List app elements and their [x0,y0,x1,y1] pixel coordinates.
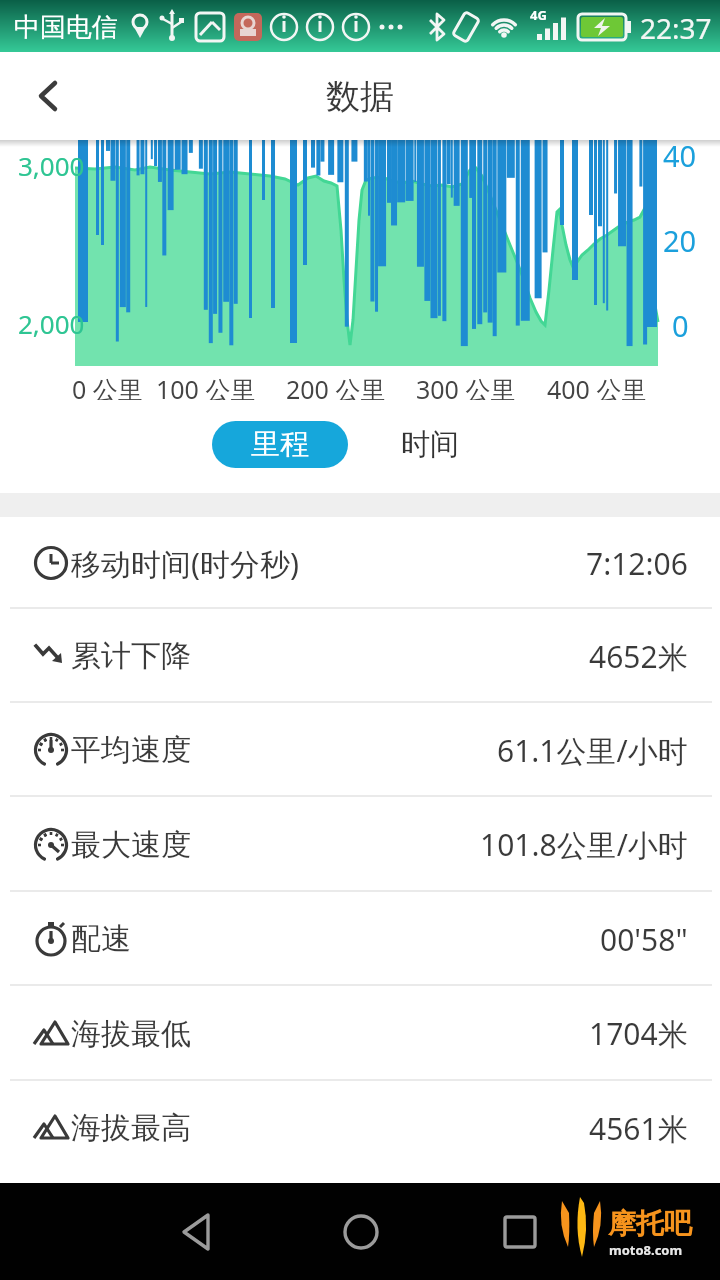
staticText: 海拔最高 [71,1109,191,1147]
button[interactable]: 配速 [0,892,720,986]
staticText: 时间 [401,426,459,463]
staticText: 0 [672,306,689,345]
staticText: 4G [530,6,547,24]
button[interactable]: 时间 [372,421,488,468]
staticText: 22:37 [640,9,712,47]
staticText: 中国电信 [14,11,118,44]
staticText: 40 [663,136,697,175]
button[interactable] [20,68,76,124]
staticText: 100 公里 [156,372,256,406]
staticText: 4561米 [589,1108,688,1149]
staticText: 101.8公里/小时 [480,824,688,865]
staticText: 3,000 [18,148,85,183]
button[interactable]: 累计下降 [0,609,720,703]
button[interactable]: 里程 [212,421,348,468]
staticText: 配速 [71,920,131,958]
staticText: moto8.com [609,1241,683,1259]
staticText: 最大速度 [71,826,191,864]
staticText: 400 公里 [547,372,647,406]
staticText: 300 公里 [416,372,516,406]
staticText: 摩托吧 [608,1206,692,1241]
button[interactable]: 最大速度 [0,797,720,892]
staticText: 平均速度 [71,731,191,769]
staticText: 2,000 [18,306,85,341]
staticText: 海拔最低 [71,1015,191,1053]
staticText: 200 公里 [286,372,386,406]
button[interactable] [480,1192,560,1272]
staticText: 7:12:06 [586,543,688,584]
staticText: 累计下降 [71,637,191,675]
staticText: 移动时间(时分秒) [71,543,299,584]
staticText: 1704米 [589,1013,688,1054]
staticText: 0 公里 [72,372,143,406]
button[interactable] [321,1192,401,1272]
staticText: 00'58" [600,919,688,960]
button[interactable]: 移动时间(时分秒) [0,517,720,609]
staticText: 61.1公里/小时 [497,730,688,771]
button[interactable] [157,1192,237,1272]
staticText: 里程 [251,426,309,463]
button[interactable]: 平均速度 [0,703,720,797]
staticText: 数据 [326,75,394,118]
staticText: 20 [663,221,697,260]
button[interactable]: 海拔最高 [0,1081,720,1175]
button[interactable]: 海拔最低 [0,986,720,1081]
staticText: 4652米 [589,636,688,677]
